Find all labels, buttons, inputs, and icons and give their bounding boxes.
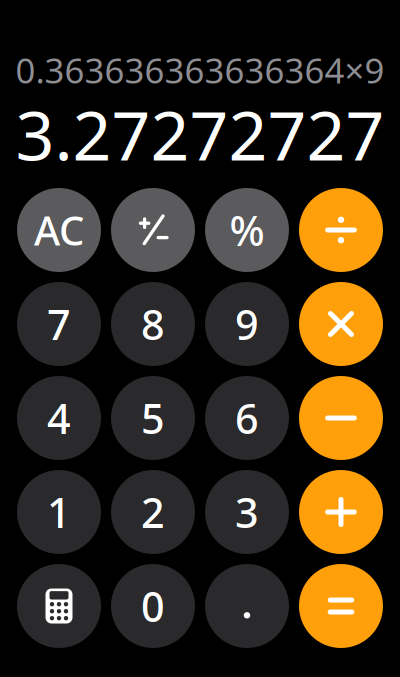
staticText: 0.363636363636364×9: [15, 47, 384, 93]
button[interactable]: 6: [205, 376, 289, 460]
button[interactable]: 9: [205, 282, 289, 366]
button[interactable]: Switch calculator mode: [17, 564, 101, 648]
button[interactable]: Decimal point: [205, 564, 289, 648]
staticText: 6: [235, 391, 259, 445]
button[interactable]: %: [205, 188, 289, 272]
button[interactable]: 7: [17, 282, 101, 366]
staticText: 9: [235, 297, 259, 351]
staticText: AC: [34, 203, 84, 256]
button[interactable]: Plus: [299, 470, 383, 554]
button[interactable]: 5: [111, 376, 195, 460]
staticText: 0: [141, 579, 165, 633]
button[interactable]: Multiply: [299, 282, 383, 366]
button[interactable]: 0: [111, 564, 195, 648]
staticText: 5: [141, 391, 165, 445]
button[interactable]: 4: [17, 376, 101, 460]
staticText: 1: [47, 485, 71, 539]
button[interactable]: 3: [205, 470, 289, 554]
staticText: 3.27272727: [15, 89, 384, 179]
button[interactable]: 2: [111, 470, 195, 554]
button[interactable]: Plus Minus: [111, 188, 195, 272]
staticText: %: [229, 203, 264, 257]
staticText: 8: [141, 297, 165, 351]
button[interactable]: Equals: [299, 564, 383, 648]
button[interactable]: Divide: [299, 188, 383, 272]
staticText: 7: [47, 297, 71, 351]
staticText: 2: [141, 485, 165, 539]
button[interactable]: Minus: [299, 376, 383, 460]
button[interactable]: 8: [111, 282, 195, 366]
button[interactable]: AC: [17, 188, 101, 272]
button[interactable]: 1: [17, 470, 101, 554]
staticText: 4: [47, 391, 71, 445]
staticText: 3: [235, 485, 259, 539]
